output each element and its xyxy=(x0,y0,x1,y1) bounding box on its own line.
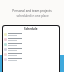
button[interactable] xyxy=(3,52,59,57)
button[interactable] xyxy=(3,37,59,42)
button[interactable] xyxy=(3,57,59,62)
staticText: scheduled in one place xyxy=(16,14,49,18)
staticText: Personal and team projects xyxy=(12,9,52,13)
button[interactable] xyxy=(3,42,59,47)
button[interactable] xyxy=(3,47,59,52)
button[interactable] xyxy=(3,32,59,37)
staticText: Schedule xyxy=(24,27,38,31)
